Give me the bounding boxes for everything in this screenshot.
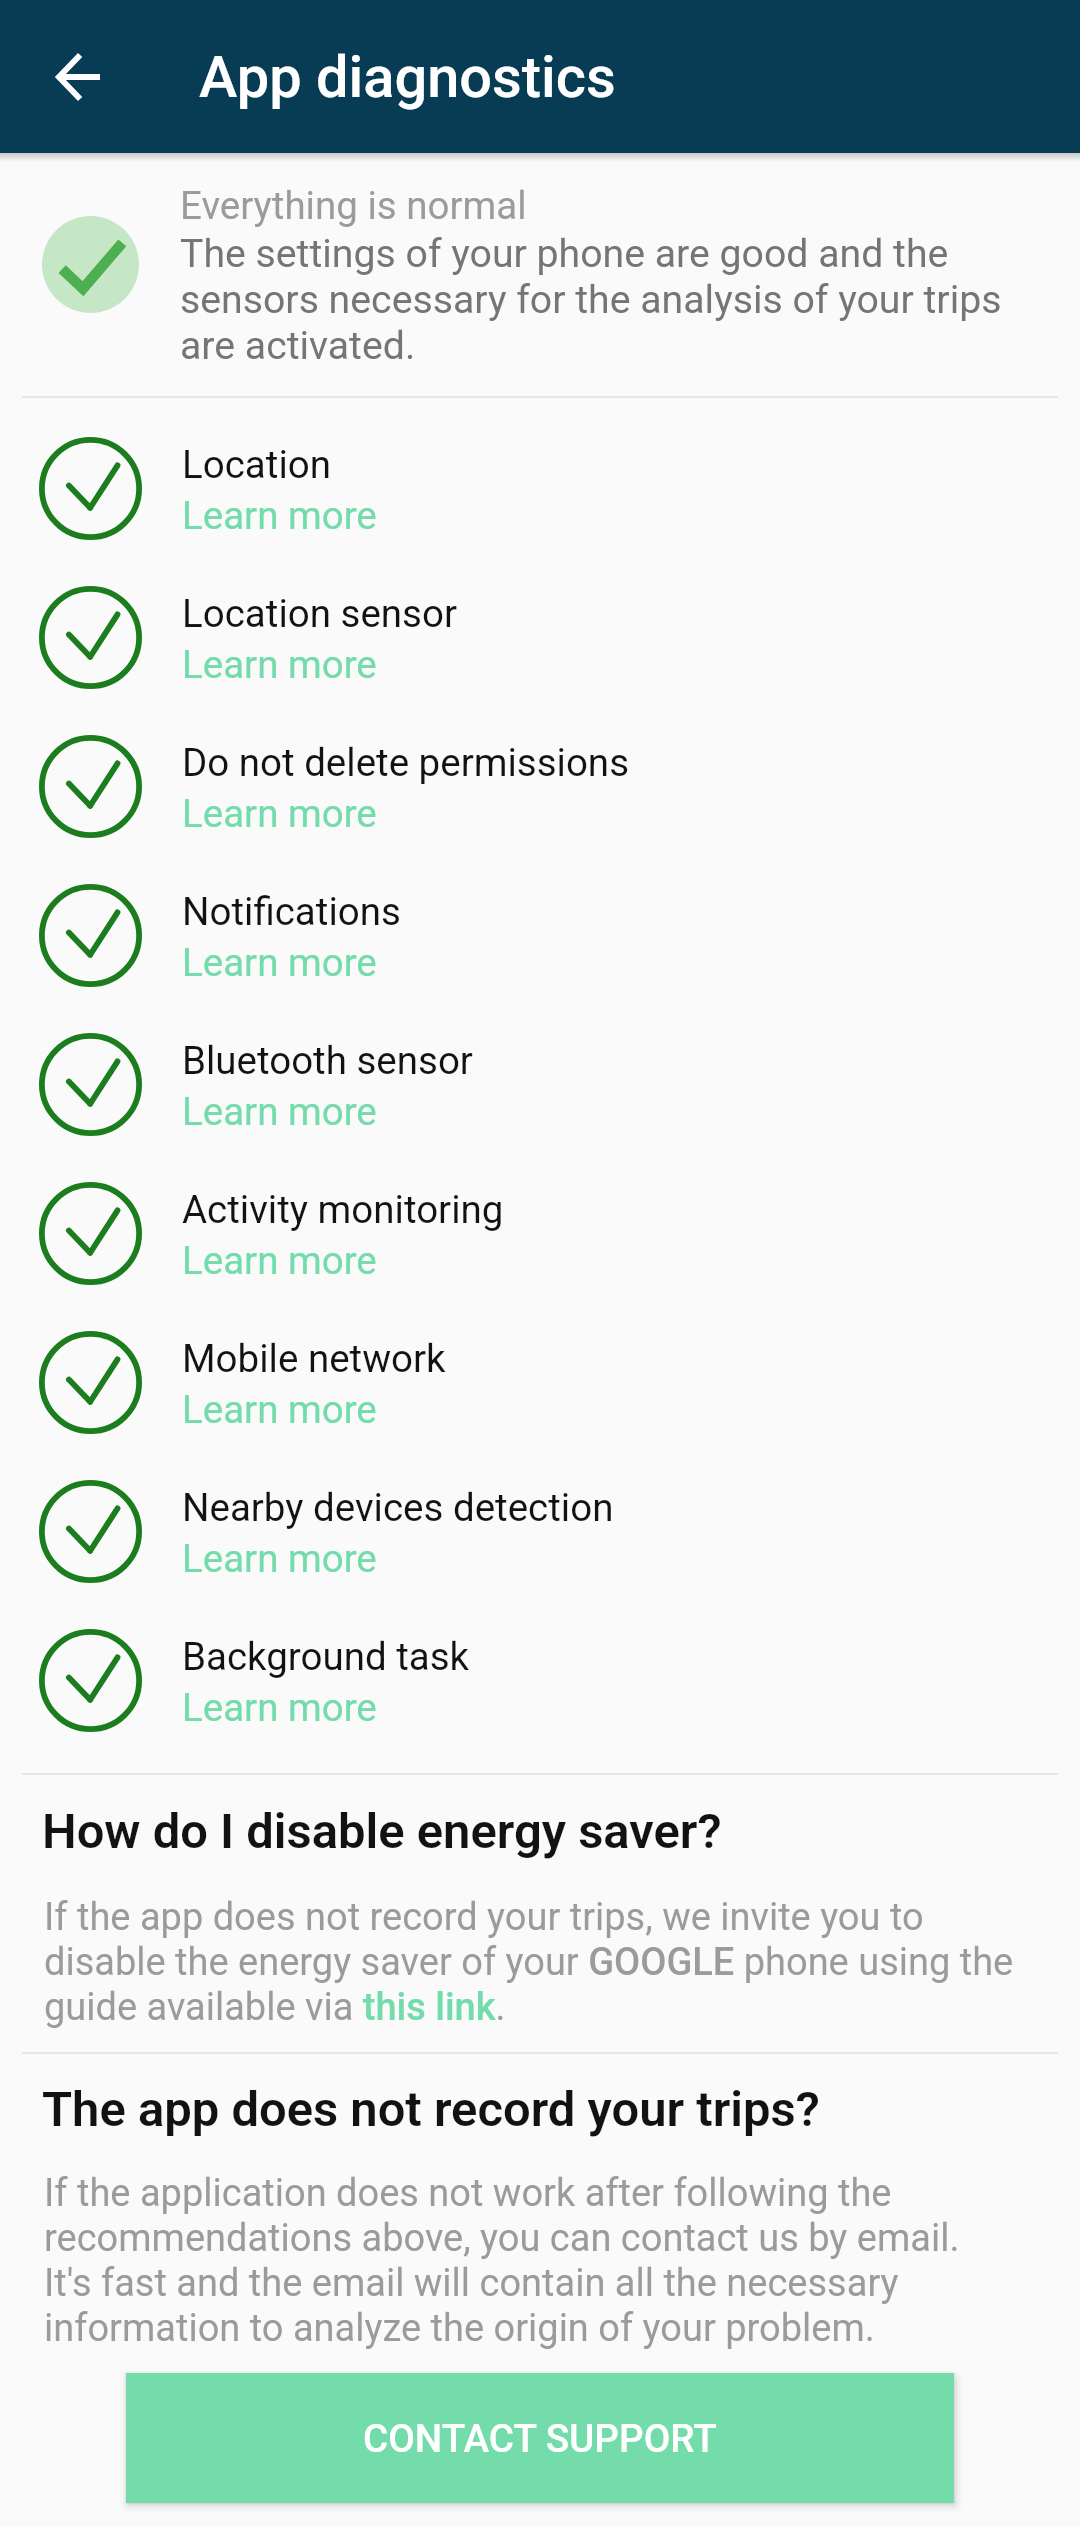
staticText: Notifications — [182, 885, 401, 936]
staticText: Learn more — [182, 1085, 377, 1136]
staticText: Learn more — [182, 1383, 377, 1434]
button[interactable]: CONTACT SUPPORT — [126, 2373, 954, 2503]
button[interactable]: Learn more — [182, 1085, 377, 1136]
staticText: Location sensor — [182, 587, 457, 638]
button[interactable]: Learn more — [182, 1681, 377, 1732]
staticText: Location — [182, 438, 331, 489]
button[interactable]: Notifications — [0, 861, 1080, 1010]
button[interactable]: Background task — [0, 1606, 1080, 1755]
staticText: App diagnostics — [199, 43, 616, 111]
staticText: The settings of your phone are good and … — [180, 231, 1003, 369]
button[interactable]: Location sensor — [0, 563, 1080, 712]
staticText: Learn more — [182, 936, 377, 987]
button[interactable]: Learn more — [182, 787, 377, 838]
button[interactable]: Learn more — [182, 1234, 377, 1285]
button[interactable]: Location — [0, 414, 1080, 563]
staticText: Learn more — [182, 489, 377, 540]
staticText: CONTACT SUPPORT — [363, 2416, 717, 2461]
staticText: The app does not record your trips? — [42, 2082, 820, 2137]
button[interactable]: Learn more — [182, 1532, 377, 1583]
staticText: Everything is normal — [180, 172, 527, 231]
staticText: If the application does not work after f… — [44, 2170, 1016, 2350]
button[interactable]: Mobile network — [0, 1308, 1080, 1457]
button[interactable]: Bluetooth sensor — [0, 1010, 1080, 1159]
staticText: If the app does not record your trips, w… — [44, 1894, 1016, 2029]
button[interactable]: Activity monitoring — [0, 1159, 1080, 1308]
staticText: Activity monitoring — [182, 1183, 504, 1234]
staticText: Bluetooth sensor — [182, 1034, 473, 1085]
staticText: Learn more — [182, 787, 377, 838]
staticText: Do not delete permissions — [182, 736, 629, 787]
button[interactable]: Learn more — [182, 936, 377, 987]
staticText: Learn more — [182, 1681, 377, 1732]
button[interactable]: Do not delete permissions — [0, 712, 1080, 861]
button[interactable]: Learn more — [182, 638, 377, 689]
staticText: Learn more — [182, 638, 377, 689]
staticText: Learn more — [182, 1234, 377, 1285]
staticText: How do I disable energy saver? — [42, 1804, 722, 1859]
button[interactable]: Back — [23, 22, 133, 132]
staticText: Background task — [182, 1630, 470, 1681]
staticText: Learn more — [182, 1532, 377, 1583]
staticText: Nearby devices detection — [182, 1481, 614, 1532]
button[interactable]: Learn more — [182, 1383, 377, 1434]
staticText: Mobile network — [182, 1332, 446, 1383]
button[interactable]: Nearby devices detection — [0, 1457, 1080, 1606]
button[interactable]: Learn more — [182, 489, 377, 540]
